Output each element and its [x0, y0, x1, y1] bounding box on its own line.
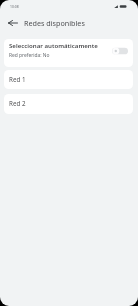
staticText: Redes disponibles [24, 18, 85, 28]
staticText: Seleccionar automáticamente [9, 41, 98, 49]
button[interactable]: Red 2 [4, 94, 133, 114]
staticText: Red 2 [9, 99, 26, 108]
button[interactable]: Atrás [5, 15, 21, 31]
staticText: Red 1 [9, 75, 26, 84]
button[interactable]: Seleccionar automáticamente [4, 39, 133, 67]
staticText: 10:08 [10, 4, 19, 9]
other: Señal y batería [114, 5, 127, 8]
button[interactable]: Red 1 [4, 70, 133, 89]
staticText: Red preferida: No [9, 52, 50, 59]
button[interactable]: Seleccionar automáticamente [112, 47, 128, 55]
